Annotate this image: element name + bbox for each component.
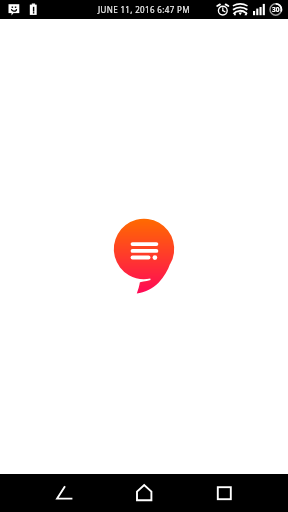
button[interactable]: Back [44, 474, 85, 512]
button[interactable]: Home [124, 474, 165, 512]
staticText: 30 [272, 5, 280, 14]
staticText: JUNE 11, 2016 6:47 PM [98, 4, 190, 15]
button[interactable]: Recent apps [204, 474, 245, 512]
